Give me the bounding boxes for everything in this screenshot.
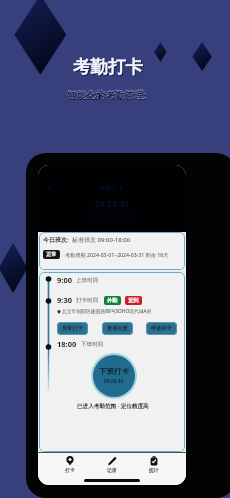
staticText: 标准班次 09:00-18:00 (72, 236, 131, 244)
button[interactable]: 今日班次: (39, 232, 185, 270)
staticText: 北京市朝阳区建国路88号SOHO现代城A座 (62, 308, 152, 315)
staticText: 考勤打卡 (73, 56, 143, 78)
staticText: 09:28:46 (95, 198, 129, 210)
staticText: 异常打卡 (62, 325, 83, 332)
button[interactable]: 申请补卡 (146, 322, 177, 335)
staticText: 9:00 (57, 275, 72, 285)
staticText: 正常 (46, 251, 57, 258)
staticText: 考勤打卡 (74, 57, 144, 79)
staticText: 考勤周期 2024-03-01~2024-03-31 剩余 16天 (65, 251, 169, 258)
staticText: 考勤打卡 (99, 184, 124, 192)
staticText: 9:30 (57, 295, 72, 305)
button[interactable]: 打卡 (60, 455, 80, 474)
button[interactable]: 查看位置 (102, 322, 133, 335)
staticText: 打卡时间 (76, 297, 99, 304)
button[interactable]: 记录 (102, 455, 122, 474)
staticText: 上班时间 (76, 277, 99, 284)
staticText: 2024年3月15日 星期五 (87, 213, 137, 220)
staticText: 09:28:46 (104, 378, 124, 385)
staticText: 下班时间 (81, 341, 104, 348)
staticText: 打卡 (65, 467, 75, 473)
staticText: 智能化的考勤管理; (67, 88, 147, 101)
staticText: 记录 (107, 467, 117, 473)
staticText: 迟到 (128, 297, 139, 304)
staticText: 18:00 (57, 339, 77, 349)
button[interactable]: 异常打卡 (57, 322, 88, 335)
staticText: 外勤 (107, 297, 118, 304)
staticText: 统计 (149, 467, 159, 473)
staticText: 已进入考勤范围 · 定位精度高 (77, 402, 149, 410)
button[interactable]: 返回 (44, 182, 55, 193)
staticText: 查看位置 (107, 325, 128, 332)
staticText: 智能化的考勤管理; (67, 89, 147, 102)
button[interactable]: 统计 (144, 455, 164, 474)
staticText: 申请补卡 (151, 325, 172, 332)
button[interactable]: 下班打卡 (93, 355, 135, 397)
staticText: 下班打卡 (99, 367, 129, 376)
staticText: 今日班次: (43, 236, 69, 244)
